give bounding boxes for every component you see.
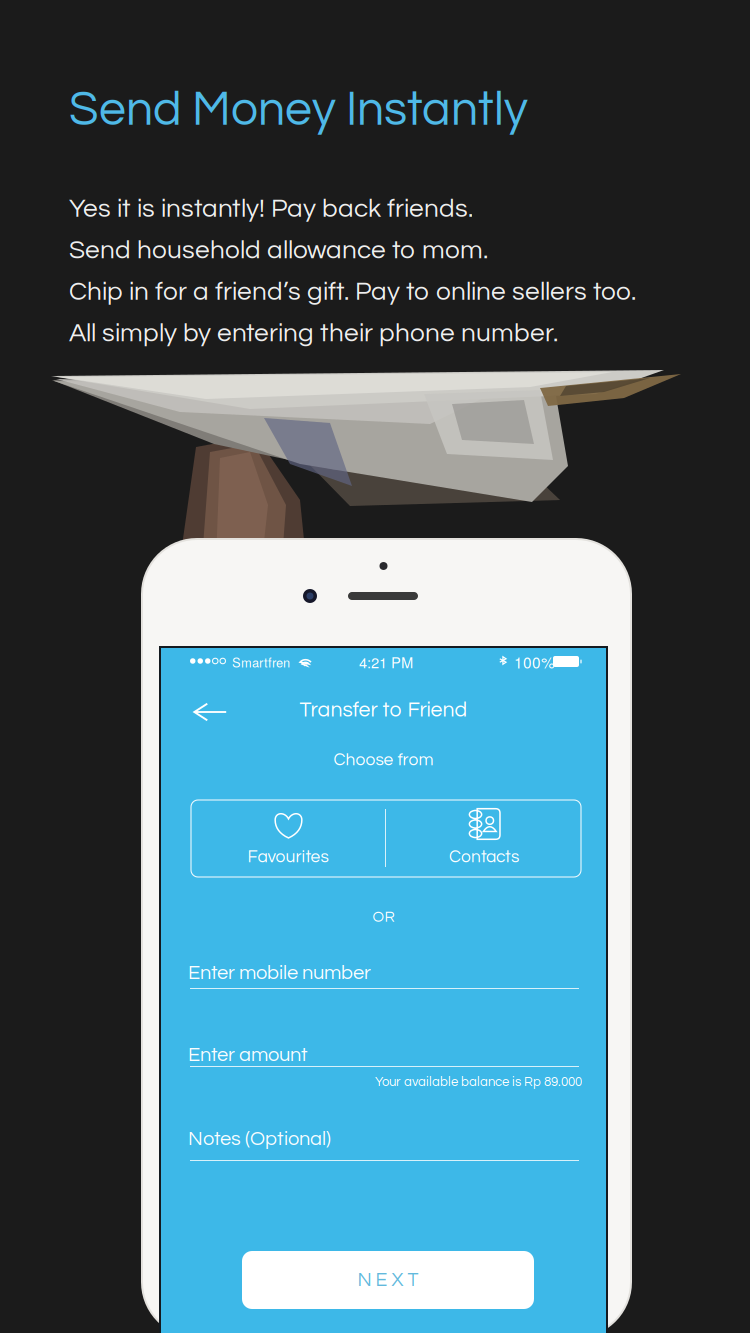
staticText: Your available balance is Rp 89.000 [375, 1075, 582, 1089]
staticText: 100% [514, 651, 555, 673]
staticText: 4:21 PM [359, 651, 413, 672]
staticText: All simply by entering their phone numbe… [69, 320, 558, 347]
button[interactable]: Contacts [387, 800, 581, 877]
staticText: Smartfren [232, 653, 290, 671]
button[interactable]: Back [179, 692, 241, 732]
staticText: Send household allowance to mom. [69, 237, 488, 264]
staticText: N E X T [357, 1270, 418, 1290]
staticText: Chip in for a friend’s gift. Pay to onli… [69, 278, 636, 305]
staticText: Contacts [449, 848, 519, 866]
staticText: Send Money Instantly [69, 85, 528, 135]
button[interactable]: Favourites [191, 800, 385, 877]
staticText: Notes (Optional) [188, 1129, 331, 1149]
staticText: Transfer to Friend [299, 699, 467, 721]
staticText: Enter amount [188, 1045, 308, 1065]
staticText: OR [372, 909, 394, 925]
staticText: Yes it is instantly! Pay back friends. [69, 195, 473, 222]
staticText: Enter mobile number [188, 963, 371, 983]
staticText: Favourites [247, 848, 328, 866]
staticText: Choose from [333, 751, 433, 769]
button[interactable]: N E X T [242, 1251, 534, 1309]
